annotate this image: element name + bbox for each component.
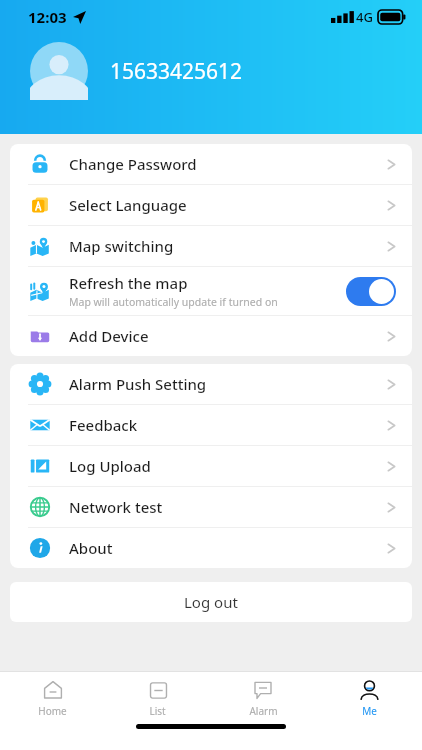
staticText: Me [362,704,377,718]
staticText: Network test [69,497,163,517]
staticText: 12:03 [28,7,67,27]
staticText: Alarm [249,704,278,718]
button[interactable]: Select Language [10,185,412,225]
button[interactable]: Refresh the map [10,267,412,315]
staticText: About [69,538,113,558]
button[interactable]: Me [316,672,422,724]
staticText: Log Upload [69,456,151,476]
staticText: 4G [356,8,373,26]
button[interactable]: Network test [10,487,412,527]
button[interactable]: Log Upload [10,446,412,486]
staticText: List [149,704,166,718]
staticText: Map switching [69,236,174,256]
staticText: Map will automatically update if turned … [69,295,278,309]
button[interactable]: List [105,672,210,724]
button[interactable]: Log out [10,582,412,622]
staticText: Change Password [69,154,197,174]
staticText: 15633425612 [110,57,243,86]
staticText: Alarm Push Setting [69,374,207,394]
button[interactable]: Alarm [210,672,316,724]
button[interactable]: Alarm Push Setting [10,364,412,404]
staticText: Select Language [69,195,187,215]
button[interactable]: About [10,528,412,568]
staticText: Feedback [69,415,138,435]
button[interactable]: Map switching [10,226,412,266]
button[interactable]: Home [0,672,105,724]
button[interactable]: Refresh the map toggle [346,277,396,306]
button[interactable]: Change Password [10,144,412,184]
staticText: Refresh the map [69,273,188,293]
staticText: Add Device [69,326,149,346]
staticText: Log out [184,592,238,612]
button[interactable]: Feedback [10,405,412,445]
button[interactable]: Add Device [10,316,412,356]
staticText: Home [38,704,67,718]
